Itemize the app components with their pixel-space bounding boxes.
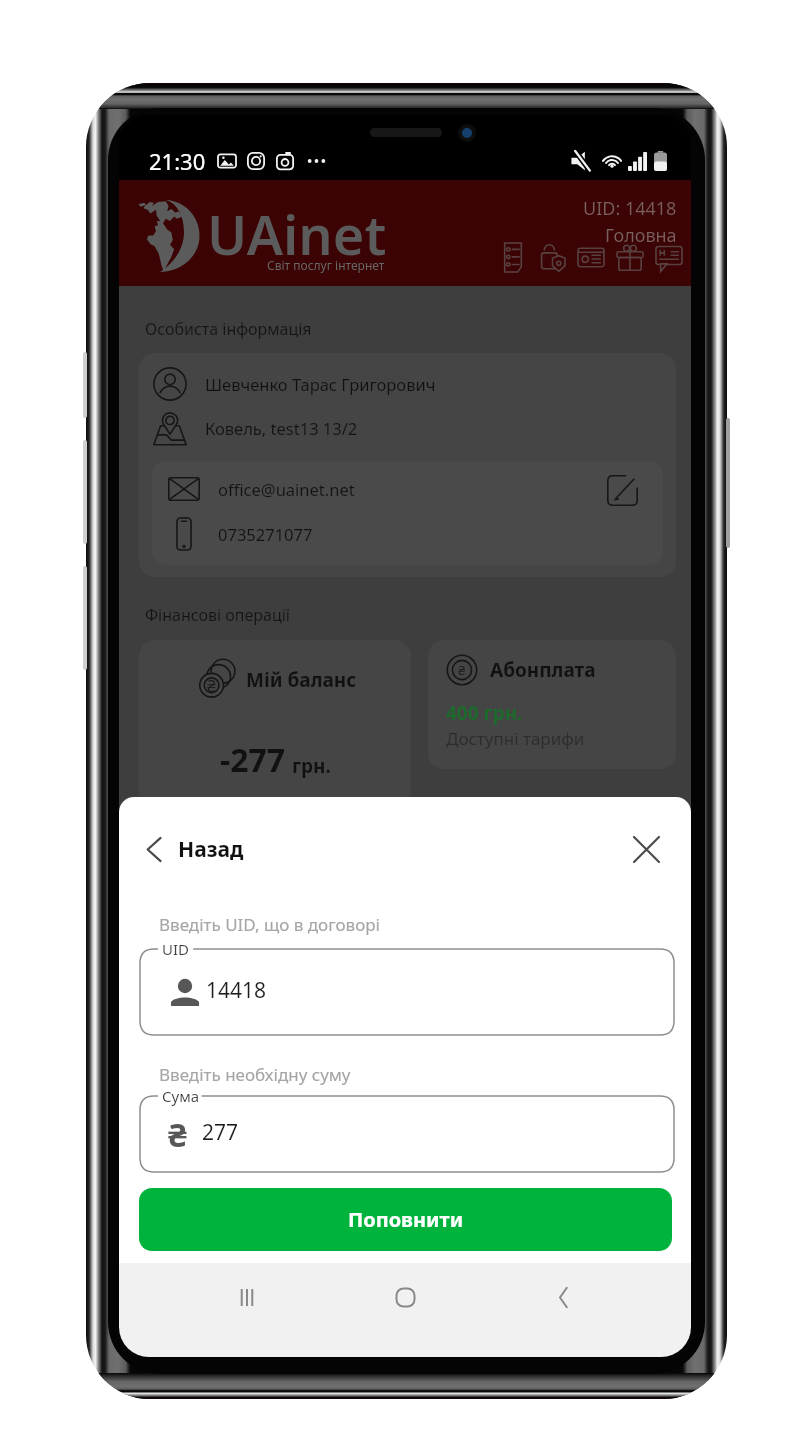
button[interactable]: Recents [216, 1274, 278, 1320]
button[interactable]: Edit [600, 468, 644, 512]
staticText: грн. [292, 753, 331, 779]
staticText: ₴ [458, 661, 466, 679]
button[interactable]: Security [532, 240, 571, 274]
staticText: 400 грн. [446, 700, 523, 726]
button[interactable]: ₴ [139, 640, 411, 840]
staticText: Мій баланс [246, 667, 357, 693]
staticText: office@uainet.net [218, 478, 355, 500]
staticText: 14418 [206, 976, 267, 1005]
staticText: Доступні тарифи [446, 727, 585, 750]
staticText: Введіть UID, що в договорі [159, 913, 380, 936]
button[interactable]: Close [624, 827, 668, 871]
staticText: Ковель, test13 13/2 [205, 417, 358, 439]
staticText: Сума [162, 1086, 200, 1106]
staticText: ₴ [207, 675, 216, 697]
button[interactable]: Gifts [610, 240, 649, 274]
staticText: Особиста інформація [145, 318, 312, 340]
staticText: ₴ [168, 1112, 187, 1157]
staticText: UAinet [207, 197, 387, 271]
staticText: Шевченко Тарас Григорович [205, 373, 436, 395]
button[interactable]: Messages [649, 240, 688, 274]
staticText: Абонплата [490, 657, 596, 683]
staticText: UID: 14418 [583, 196, 677, 221]
staticText: Головна [605, 223, 677, 248]
button[interactable]: ₴ [428, 640, 676, 769]
staticText: Введіть необхідну суму [159, 1063, 351, 1086]
staticText: UID [162, 939, 190, 959]
staticText: 0735271077 [218, 523, 313, 545]
staticText: 21:30 [149, 146, 206, 176]
button[interactable]: Card [571, 240, 610, 274]
staticText: Фінансові операції [145, 604, 290, 626]
button[interactable]: Home [374, 1274, 436, 1320]
staticText: Світ послуг інтернет [267, 257, 385, 273]
staticText: Поповнити [348, 1206, 464, 1233]
button[interactable]: Поповнити [139, 1188, 672, 1251]
staticText: Назад [178, 835, 244, 864]
button[interactable]: Назад [139, 825, 256, 873]
staticText: 277 [202, 1118, 239, 1147]
button[interactable]: Documents [493, 240, 532, 274]
button[interactable]: Back [533, 1274, 595, 1320]
staticText: -277 [220, 738, 286, 782]
